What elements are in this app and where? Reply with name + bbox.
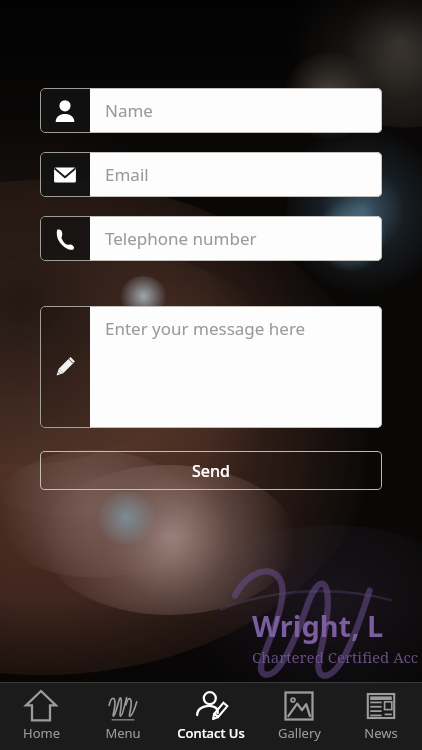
staticText: Contact Us xyxy=(177,724,245,742)
button[interactable]: Name xyxy=(40,88,382,133)
button[interactable]: Home xyxy=(0,683,82,750)
button[interactable]: Enter your message here xyxy=(40,306,382,428)
staticText: Chartered Certified Acc xyxy=(252,647,419,667)
button[interactable]: Contact Us xyxy=(164,683,258,750)
button[interactable]: News xyxy=(340,683,422,750)
staticText: Email xyxy=(105,163,149,186)
staticText: Telephone number xyxy=(105,227,257,250)
button[interactable]: Send xyxy=(40,451,382,490)
staticText: Menu xyxy=(105,724,141,742)
button[interactable]: Gallery xyxy=(258,683,340,750)
staticText: Send xyxy=(192,460,230,482)
staticText: Name xyxy=(105,99,153,122)
staticText: Home xyxy=(23,724,60,742)
staticText: Wright, L xyxy=(252,606,384,645)
staticText: Enter your message here xyxy=(105,317,306,340)
staticText: Gallery xyxy=(278,724,321,742)
button[interactable]: Menu xyxy=(82,683,164,750)
button[interactable]: Telephone number xyxy=(40,216,382,261)
staticText: News xyxy=(364,724,398,742)
button[interactable]: Email xyxy=(40,152,382,197)
